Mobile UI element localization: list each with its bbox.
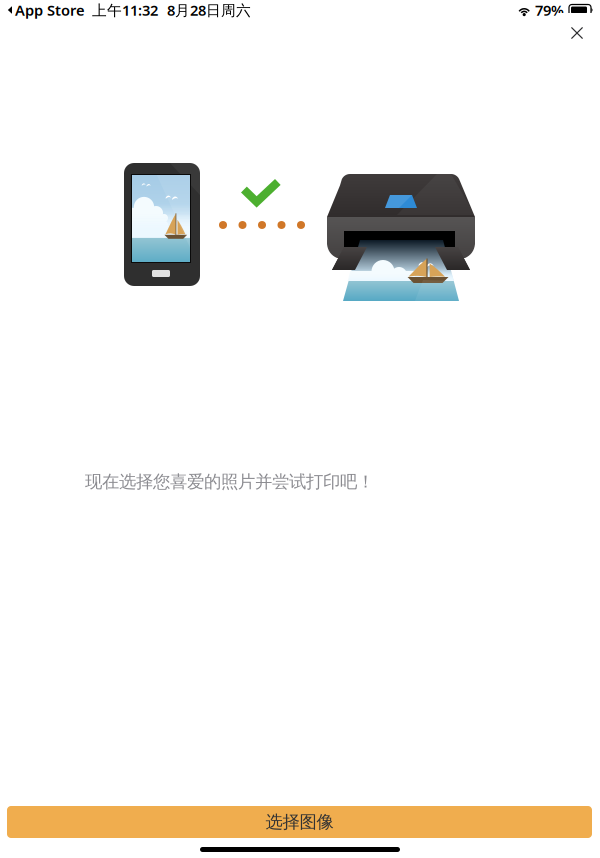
button[interactable]: Close xyxy=(557,13,597,53)
button[interactable]: 选择图像 xyxy=(7,806,592,838)
staticText: 现在选择您喜爱的照片并尝试打印吧！ xyxy=(85,471,374,492)
staticText: 上午11:32 xyxy=(92,0,158,20)
staticText: 选择图像 xyxy=(265,811,333,833)
staticText: App Store xyxy=(15,0,85,20)
staticText: 79% xyxy=(535,0,564,20)
staticText: 8月28日周六 xyxy=(167,0,251,20)
